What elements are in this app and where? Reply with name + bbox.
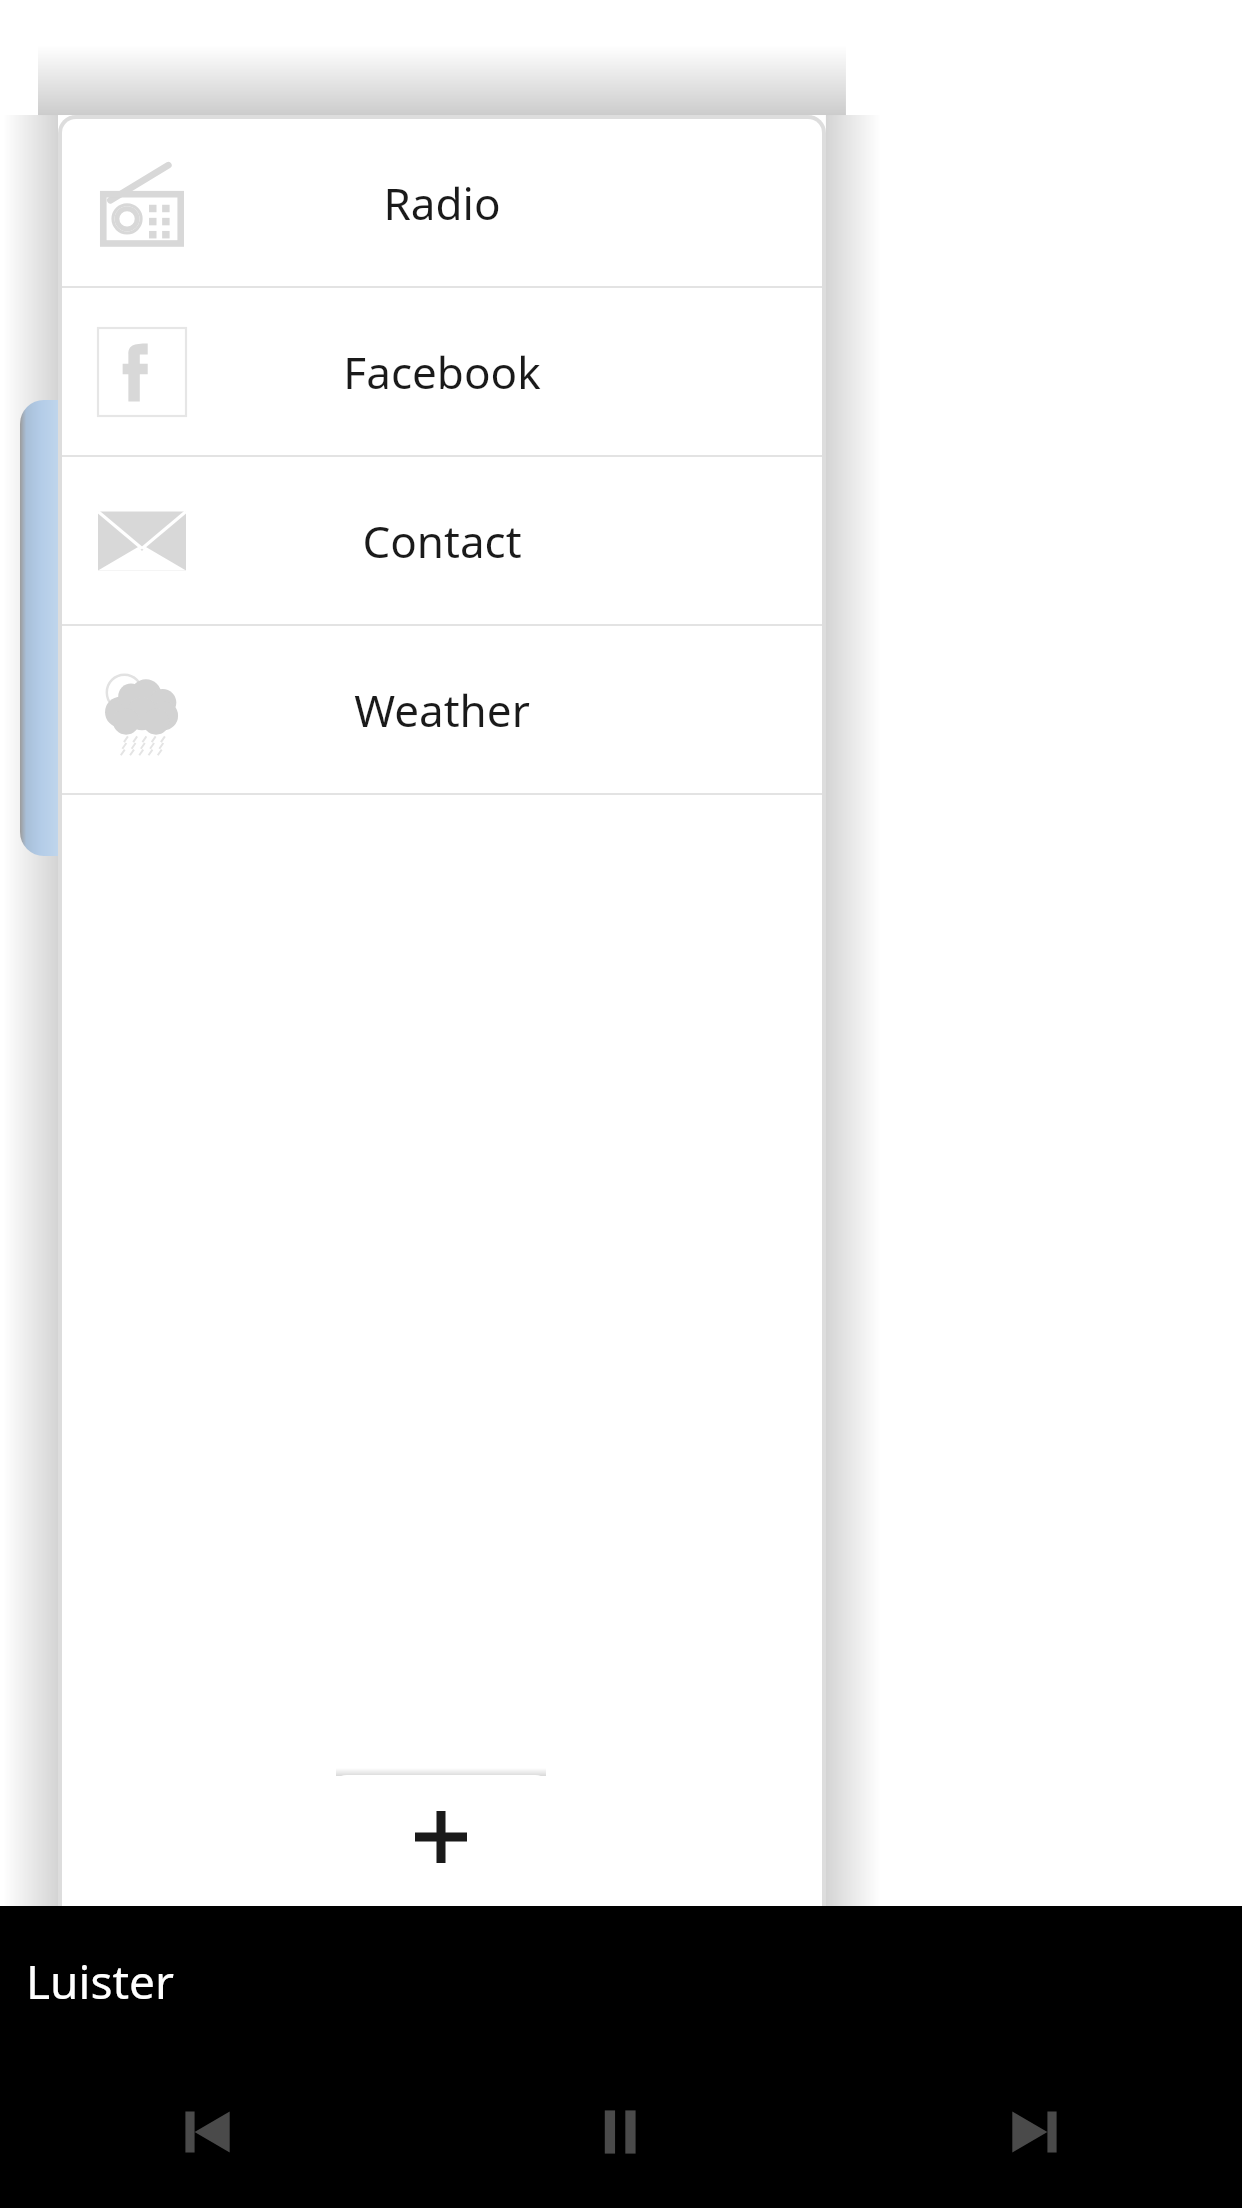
button[interactable]: Contact (62, 457, 822, 624)
staticText: Luister (26, 1950, 174, 2013)
button[interactable]: Luister (0, 1906, 1242, 2056)
button[interactable]: Facebook (62, 288, 822, 455)
button[interactable]: Weather (62, 626, 822, 793)
button[interactable]: Radio (62, 119, 822, 286)
staticText: Weather (354, 680, 530, 740)
staticText: Facebook (343, 342, 541, 402)
button[interactable]: Pause (414, 2056, 828, 2208)
button[interactable]: Previous page (20, 400, 68, 856)
staticText: Contact (362, 511, 522, 571)
button[interactable]: Next (828, 2056, 1242, 2208)
button[interactable]: Previous (0, 2056, 414, 2208)
button[interactable]: Add (330, 1775, 552, 1918)
staticText: Radio (383, 173, 501, 233)
